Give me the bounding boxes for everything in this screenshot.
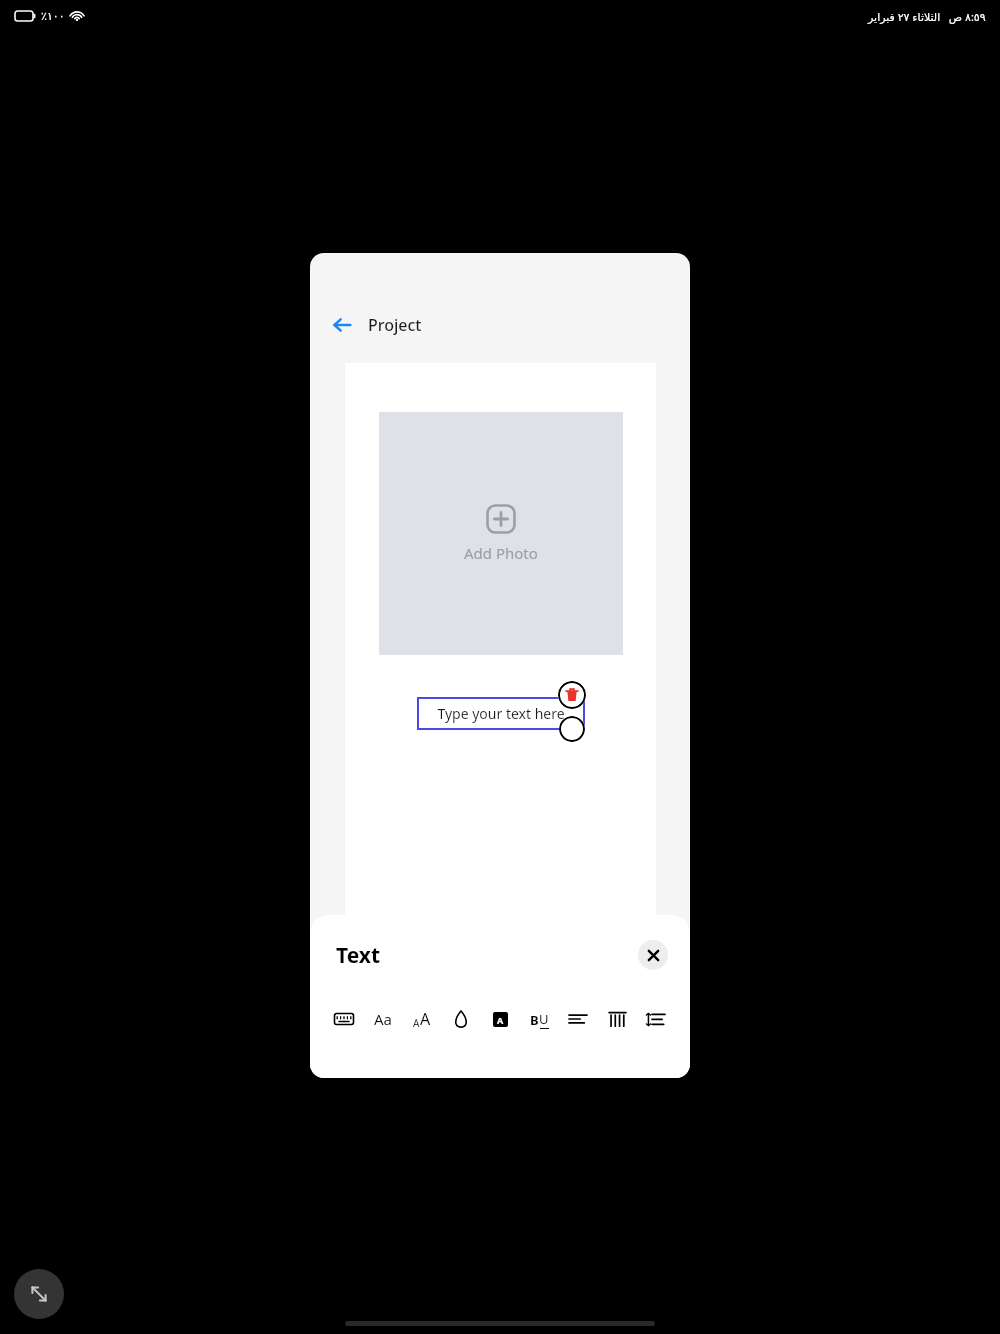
- staticText: Project: [368, 314, 422, 336]
- button[interactable]: Font: [367, 1003, 399, 1035]
- button[interactable]: Text size: [406, 1003, 438, 1035]
- staticText: Add Photo: [464, 543, 538, 563]
- button[interactable]: Back: [324, 307, 360, 343]
- staticText: Text: [336, 941, 381, 970]
- button[interactable]: Delete text: [558, 681, 586, 709]
- button[interactable]: Letter spacing: [601, 1003, 633, 1035]
- staticText: Aa: [374, 1009, 393, 1029]
- staticText: Type your text here: [437, 704, 565, 723]
- staticText: U: [539, 1010, 549, 1028]
- button[interactable]: Resize window: [14, 1269, 64, 1319]
- staticText: A: [420, 1008, 431, 1030]
- button[interactable]: Line height: [640, 1003, 672, 1035]
- button[interactable]: Keyboard: [328, 1003, 360, 1035]
- staticText: ٨:٥٩ ص الثلاثاء ٢٧ فبراير: [868, 9, 986, 24]
- button[interactable]: Resize text: [559, 716, 585, 742]
- button[interactable]: Close: [638, 940, 668, 970]
- staticText: A: [497, 1014, 504, 1026]
- button[interactable]: Type your text here: [417, 697, 585, 730]
- staticText: B: [530, 1011, 539, 1029]
- button[interactable]: Opacity: [445, 1003, 477, 1035]
- button[interactable]: Bold underline: [523, 1003, 555, 1035]
- button[interactable]: Text color: [484, 1003, 516, 1035]
- button[interactable]: Alignment: [562, 1003, 594, 1035]
- button[interactable]: Add Photo: [379, 412, 623, 655]
- staticText: ٪١٠٠: [41, 10, 65, 23]
- staticText: A: [413, 1016, 420, 1030]
